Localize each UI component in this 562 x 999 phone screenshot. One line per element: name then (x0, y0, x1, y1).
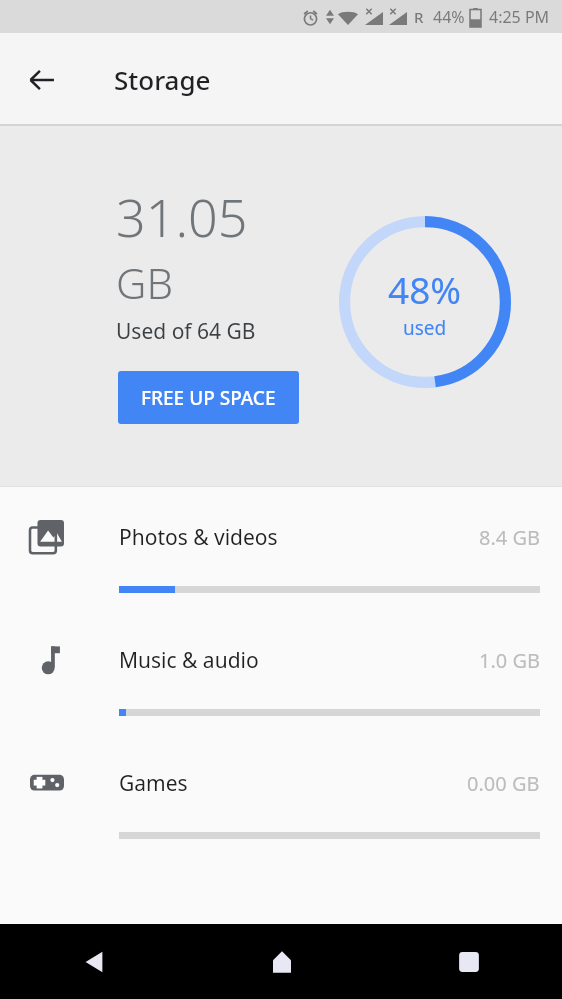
staticText: 48% (388, 264, 462, 314)
staticText: 1.0 GB (479, 647, 540, 674)
button[interactable]: Games (0, 716, 562, 839)
staticText: R (414, 7, 424, 27)
staticText: Used of 64 GB (116, 317, 256, 346)
staticText: 4:25 PM (489, 6, 550, 28)
staticText: Games (119, 769, 188, 798)
staticText: 8.4 GB (479, 524, 540, 551)
button[interactable]: FREE UP SPACE (118, 371, 299, 424)
staticText: 44% (433, 6, 465, 28)
button[interactable]: Back (0, 924, 188, 999)
button[interactable]: Photos & videos (0, 487, 562, 593)
staticText: GB (116, 254, 173, 311)
staticText: Storage (114, 62, 211, 97)
button[interactable]: Recent apps (375, 924, 562, 999)
staticText: used (403, 315, 447, 341)
staticText: 0.00 GB (467, 770, 540, 797)
staticText: Music & audio (119, 646, 259, 675)
staticText: FREE UP SPACE (141, 385, 276, 411)
button[interactable]: Music & audio (0, 593, 562, 716)
button[interactable]: Back (14, 52, 70, 108)
staticText: 31.05 (116, 181, 248, 252)
staticText: Photos & videos (119, 523, 278, 552)
button[interactable]: Home (188, 924, 375, 999)
